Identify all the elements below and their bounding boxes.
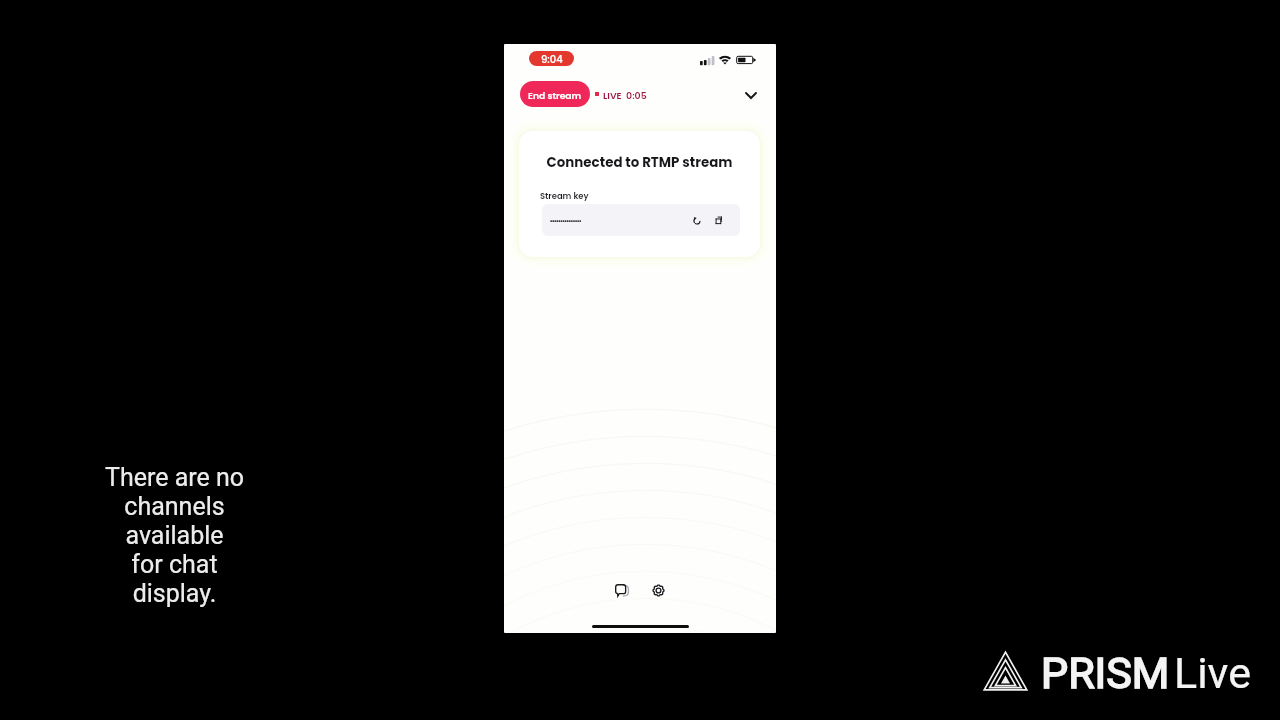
staticText: End stream xyxy=(528,89,582,102)
staticText: Live xyxy=(1174,648,1251,698)
button[interactable]: Settings xyxy=(643,575,674,606)
button[interactable]: Reset stream key xyxy=(685,208,710,233)
staticText: There are no channels available for chat… xyxy=(64,463,285,608)
staticText: Connected to RTMP stream xyxy=(519,153,760,172)
button[interactable]: Chat xyxy=(606,575,637,606)
staticText: PRISM xyxy=(1041,648,1170,698)
staticText: 9:04 xyxy=(541,52,563,66)
button[interactable]: End stream xyxy=(520,81,590,107)
button[interactable]: Copy stream key xyxy=(707,208,732,233)
button[interactable]: Collapse panel xyxy=(737,81,765,109)
staticText: LIVE 0:05 xyxy=(603,89,647,102)
staticText: Stream key xyxy=(540,190,589,202)
